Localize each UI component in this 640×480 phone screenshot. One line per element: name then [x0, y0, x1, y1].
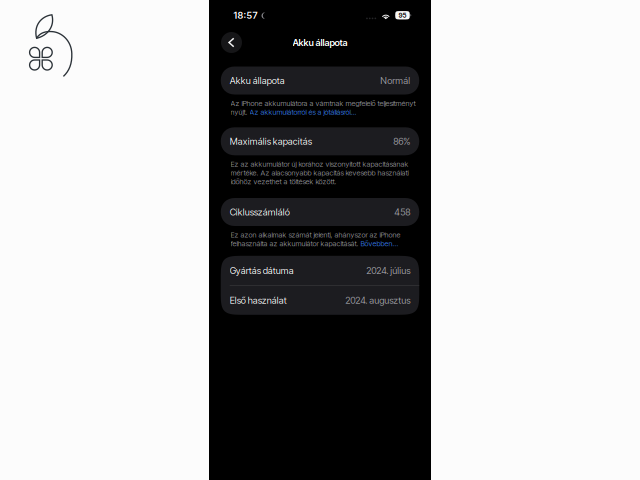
button[interactable]: Akku állapota [221, 66, 419, 94]
staticText: felhasználta az akkumulátor kapacitását. [230, 239, 360, 248]
staticText: 86% [393, 136, 410, 147]
staticText: időhöz vezethet a töltések között. [230, 177, 336, 186]
staticText: Ez az akkumulátor új korához viszonyítot… [230, 160, 408, 169]
button[interactable]: Gyártás dátuma [221, 256, 419, 285]
staticText: Az iPhone akkumulátora a várntnak megfel… [230, 99, 415, 108]
staticText: Gyártás dátuma [230, 265, 294, 276]
button[interactable]: Back [221, 32, 242, 53]
staticText: mértéke. Az alacsonyabb kapacitás kevese… [230, 168, 408, 177]
staticText: Akku állapota [292, 37, 347, 48]
staticText: Akku állapota [230, 75, 285, 86]
staticText: 2024. július [366, 265, 410, 276]
staticText: 18:57 [233, 10, 257, 21]
staticText: Az akkumulátorról és a jótállásról... [249, 108, 356, 116]
staticText: Bővebben... [360, 239, 398, 248]
staticText: nyújt. [230, 108, 249, 116]
staticText: Ciklusszámláló [230, 206, 290, 218]
staticText: 95 [398, 11, 406, 19]
staticText: 2024. augusztus [345, 295, 410, 306]
button[interactable]: Ciklusszámláló [221, 198, 419, 226]
staticText: Ez azon alkalmak számát jelenti, ahánysz… [230, 230, 400, 239]
staticText: Maximális kapacitás [230, 136, 312, 147]
staticText: Első használat [230, 295, 287, 306]
button[interactable]: Első használat [221, 286, 419, 315]
staticText: Normál [380, 75, 410, 86]
button[interactable]: Maximális kapacitás [221, 127, 419, 155]
staticText: 458 [394, 206, 410, 218]
